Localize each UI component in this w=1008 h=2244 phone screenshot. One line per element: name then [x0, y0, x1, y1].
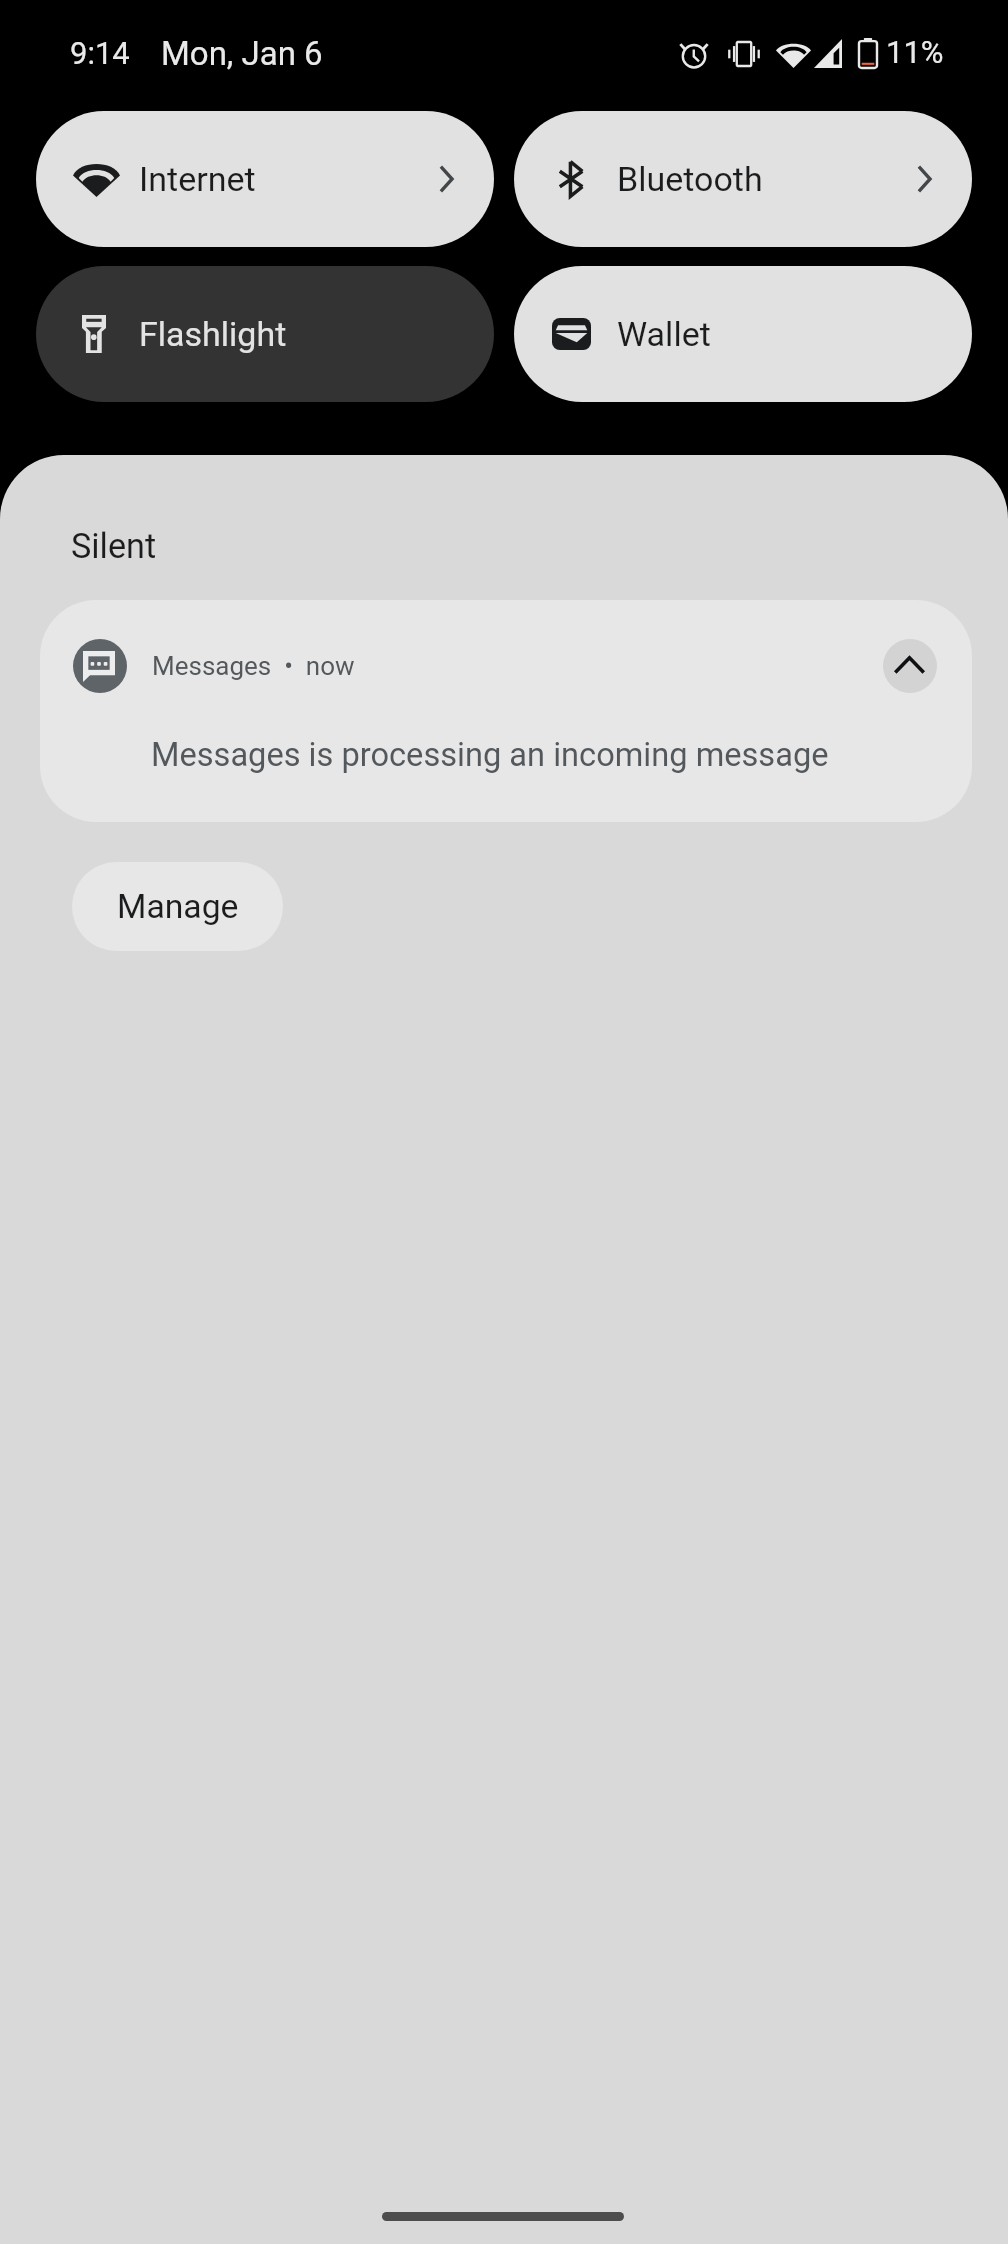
- staticText: Messages • now: [152, 651, 355, 681]
- staticText: 9:14: [70, 35, 130, 71]
- button[interactable]: Manage: [72, 862, 283, 951]
- button[interactable]: Messages • now: [40, 600, 972, 822]
- staticText: Mon, Jan 6: [161, 34, 323, 73]
- staticText: Flashlight: [139, 314, 287, 354]
- staticText: Silent: [71, 526, 157, 566]
- staticText: Wallet: [617, 314, 711, 354]
- staticText: Internet: [139, 159, 256, 199]
- staticText: 11%: [886, 34, 944, 70]
- button[interactable]: Collapse notification: [883, 639, 937, 693]
- staticText: Bluetooth: [617, 159, 763, 199]
- button[interactable]: Flashlight: [36, 266, 494, 402]
- staticText: Messages is processing an incoming messa…: [151, 736, 829, 774]
- staticText: Manage: [117, 887, 239, 926]
- button[interactable]: Wallet: [514, 266, 972, 402]
- button[interactable]: Internet: [36, 111, 494, 247]
- button[interactable]: Bluetooth: [514, 111, 972, 247]
